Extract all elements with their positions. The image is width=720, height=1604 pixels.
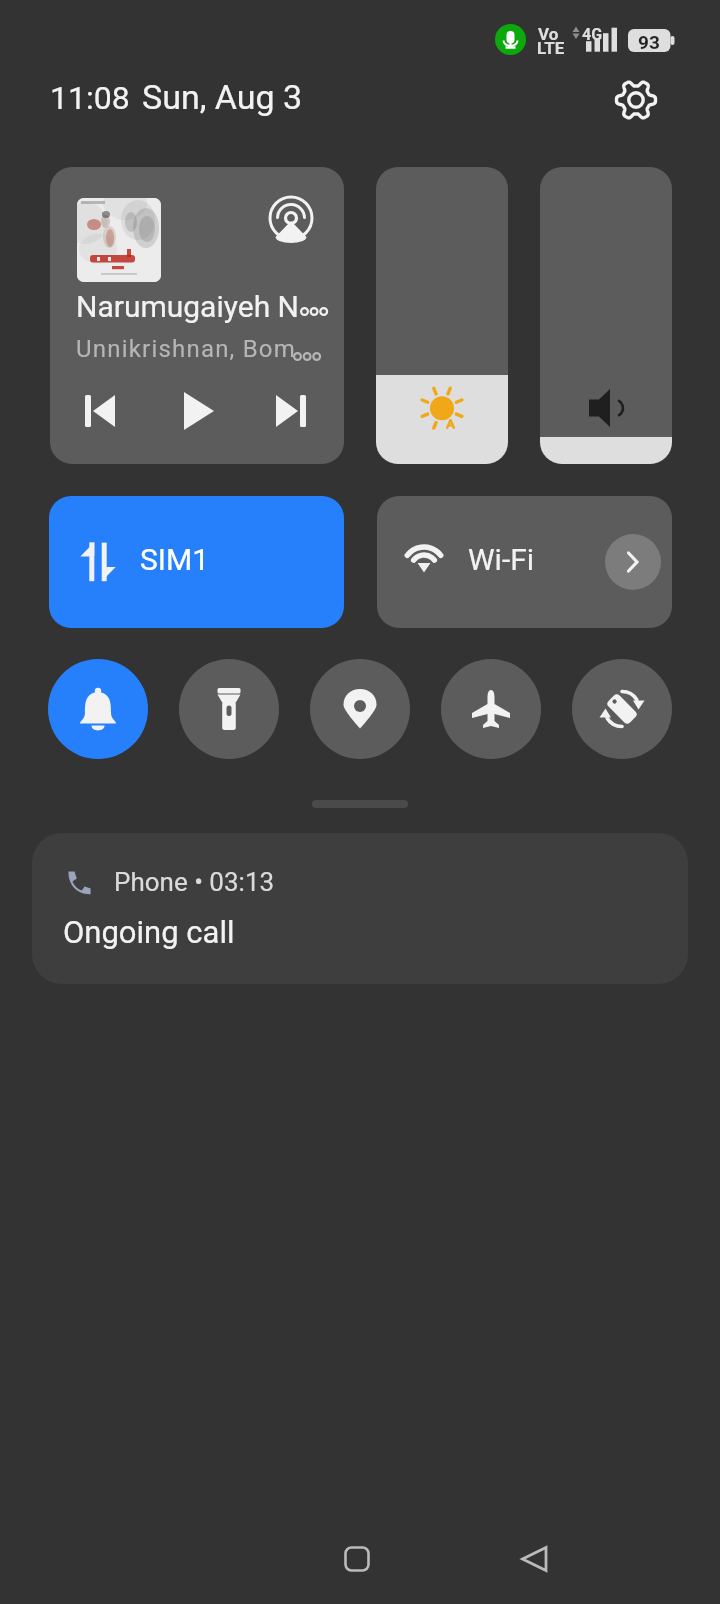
staticText: Narumugaiyeh N (76, 289, 300, 324)
staticText: 4G (582, 25, 603, 44)
button[interactable]: Phone • 03:13 (32, 833, 688, 984)
staticText: SIM1 (140, 542, 210, 577)
button[interactable]: Brightness (376, 167, 508, 464)
staticText: Vo (538, 24, 559, 44)
staticText: Unnikrishnan, Bom (76, 335, 296, 363)
button[interactable]: Auto rotate (572, 659, 672, 759)
staticText: 93 (628, 31, 670, 53)
button[interactable]: Home (333, 1535, 381, 1583)
staticText: Ongoing call (63, 914, 235, 950)
button[interactable]: Wi-Fi settings (605, 534, 661, 590)
staticText: Phone • 03:13 (114, 867, 275, 897)
button[interactable]: Previous track (72, 382, 129, 439)
button[interactable]: Next track (261, 382, 318, 439)
button[interactable]: Location (310, 659, 410, 759)
button[interactable]: Cast (50, 167, 344, 464)
other: Microphone in use (495, 24, 526, 55)
button[interactable]: Airplane mode (441, 659, 541, 759)
button[interactable]: Settings (606, 70, 666, 130)
staticText: Wi-Fi (468, 542, 535, 577)
button[interactable]: Flashlight (179, 659, 279, 759)
button[interactable]: SIM1 (49, 496, 344, 628)
button[interactable]: Play (169, 382, 226, 439)
staticText: Sun, Aug 3 (142, 77, 303, 117)
button[interactable]: Cast (267, 194, 315, 242)
staticText: 11:08 (50, 79, 130, 117)
staticText: LTE (537, 38, 565, 58)
button[interactable]: Back (511, 1535, 559, 1583)
button[interactable]: Notifications (48, 659, 148, 759)
button[interactable]: Volume (540, 167, 672, 464)
button[interactable]: Wi-Fi (377, 496, 672, 628)
